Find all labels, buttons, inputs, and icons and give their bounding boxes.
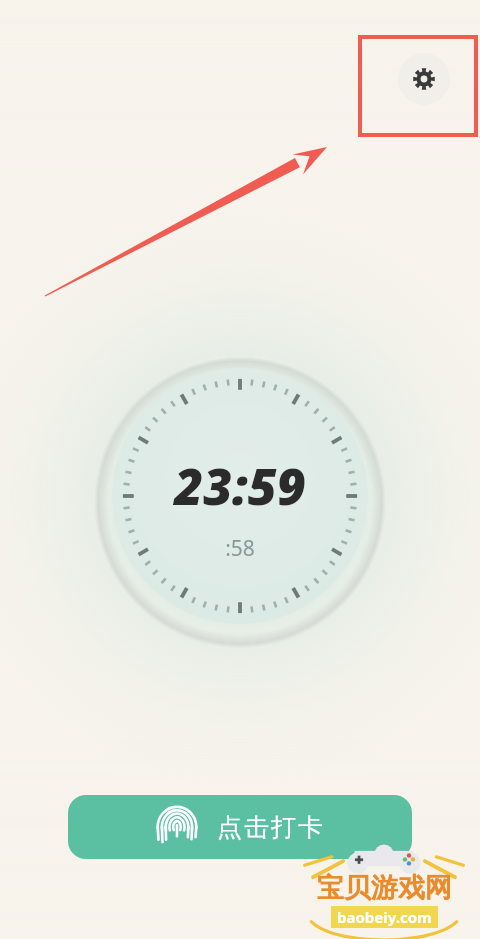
staticText: baobeiy.com: [337, 907, 432, 927]
staticText: 点击打卡: [216, 812, 324, 843]
button[interactable]: Settings: [398, 53, 450, 105]
staticText: 23:59: [174, 452, 306, 520]
staticText: 宝贝游戏网: [317, 871, 452, 905]
staticText: :58: [225, 534, 255, 563]
button[interactable]: 点击打卡: [68, 795, 412, 859]
